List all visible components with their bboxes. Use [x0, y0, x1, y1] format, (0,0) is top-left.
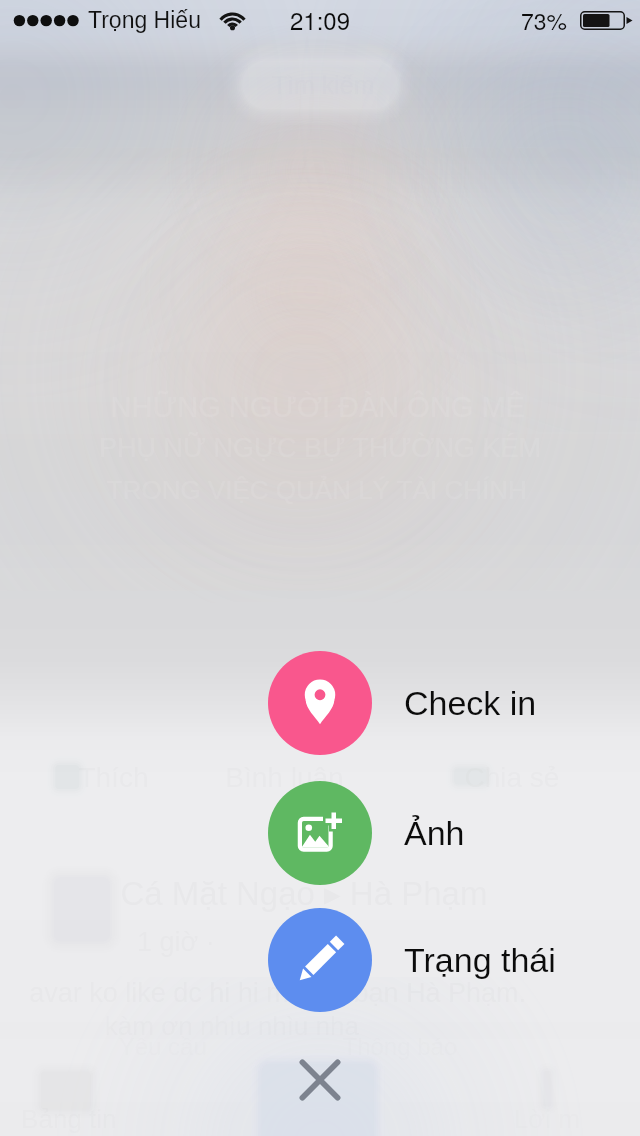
staticText: Check in — [404, 684, 537, 722]
button[interactable]: Check in — [0, 651, 640, 755]
staticText: 21:09 — [290, 2, 351, 36]
staticText: Trạng thái — [404, 941, 556, 979]
button[interactable]: Ảnh — [0, 781, 640, 885]
button[interactable]: Close — [272, 1032, 368, 1128]
staticText: 73% — [521, 4, 568, 37]
staticText: Trọng Hiếu — [88, 7, 201, 33]
button[interactable]: Trạng thái — [0, 908, 640, 1012]
staticText: Ảnh — [404, 814, 465, 852]
